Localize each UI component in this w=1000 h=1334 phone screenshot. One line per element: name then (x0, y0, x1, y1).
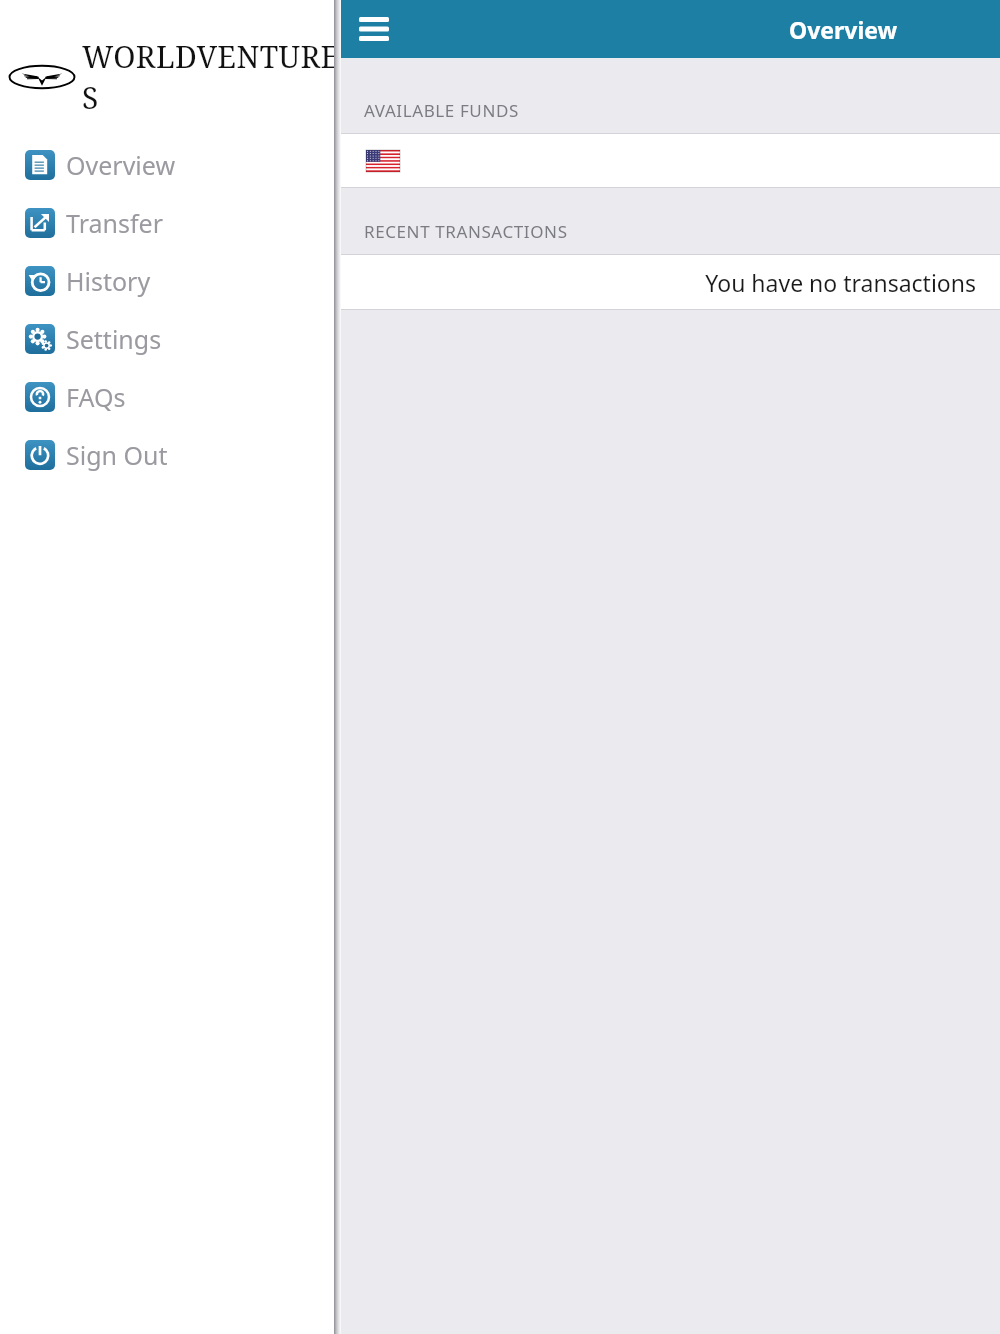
button[interactable]: FAQs (0, 368, 334, 426)
button[interactable]: Open navigation menu (350, 5, 398, 53)
staticText: WORLDVENTURES (82, 36, 342, 118)
button[interactable]: Transfer (0, 194, 334, 252)
button[interactable]: You have no transactions (341, 255, 1000, 309)
button[interactable]: History (0, 252, 334, 310)
button[interactable]: United States Dollar (341, 134, 1000, 187)
button[interactable]: Overview (0, 136, 334, 194)
other: United States Dollar (366, 150, 400, 172)
button[interactable]: Settings (0, 310, 334, 368)
staticText: Sign Out (66, 438, 168, 472)
staticText: Overview (66, 148, 176, 182)
staticText: Settings (66, 322, 162, 356)
staticText: FAQs (66, 380, 126, 414)
staticText: RECENT TRANSACTIONS (364, 220, 568, 243)
staticText: Transfer (66, 206, 163, 240)
staticText: You have no transactions (705, 267, 976, 298)
staticText: AVAILABLE FUNDS (364, 99, 519, 122)
staticText: History (66, 264, 151, 298)
staticText: Overview (789, 14, 898, 45)
button[interactable]: Sign Out (0, 426, 334, 484)
